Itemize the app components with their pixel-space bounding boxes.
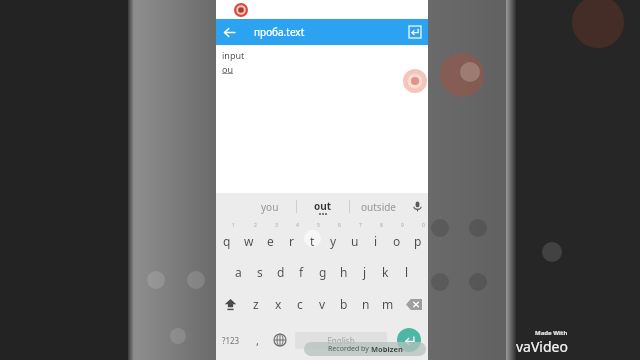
staticText: Mobizen — [371, 344, 403, 354]
button[interactable]: b — [333, 288, 355, 320]
button[interactable]: d — [270, 256, 291, 288]
button[interactable]: o — [386, 220, 407, 256]
staticText: 6 — [338, 222, 341, 229]
staticText: j — [363, 264, 367, 280]
staticText: y — [330, 233, 337, 249]
staticText: a — [235, 264, 242, 280]
staticText: p — [414, 233, 422, 249]
button[interactable]: a — [228, 256, 249, 288]
staticText: 7 — [359, 222, 362, 229]
button[interactable]: r — [281, 220, 302, 256]
button[interactable]: k — [375, 256, 396, 288]
button[interactable]: Backspace — [399, 288, 428, 320]
button[interactable]: j — [354, 256, 375, 288]
staticText: 8 — [380, 222, 383, 229]
button[interactable]: v — [311, 288, 333, 320]
staticText: 3 — [275, 222, 278, 229]
staticText: z — [253, 296, 259, 312]
staticText: ?123 — [222, 335, 240, 346]
button[interactable]: y — [323, 220, 344, 256]
staticText: 9 — [401, 222, 404, 229]
staticText: 4 — [296, 222, 299, 229]
staticText: k — [382, 264, 389, 280]
button[interactable]: Shift — [216, 288, 245, 320]
button[interactable]: outside — [350, 193, 406, 220]
staticText: l — [405, 264, 409, 280]
staticText: ou — [222, 63, 234, 75]
staticText: m — [382, 296, 394, 312]
staticText: h — [340, 264, 348, 280]
staticText: input — [222, 49, 245, 61]
staticText: 1 — [232, 222, 235, 229]
staticText: c — [297, 296, 303, 312]
staticText: x — [275, 296, 282, 312]
staticText: проба.text — [254, 25, 305, 39]
staticText: you — [261, 200, 279, 214]
button[interactable]: you — [244, 193, 296, 220]
staticText: d — [277, 264, 285, 280]
button[interactable]: c — [289, 288, 311, 320]
button[interactable]: ?123 — [216, 320, 246, 360]
staticText: s — [257, 264, 263, 280]
staticText: o — [393, 233, 401, 249]
button[interactable]: Enter — [390, 320, 428, 360]
staticText: n — [362, 296, 370, 312]
button[interactable]: z — [245, 288, 267, 320]
button[interactable]: u — [344, 220, 365, 256]
button[interactable]: Voice input — [406, 193, 428, 220]
staticText: v — [319, 296, 326, 312]
staticText: r — [289, 233, 294, 249]
staticText: outside — [361, 200, 396, 214]
staticText: w — [244, 233, 254, 249]
staticText: 2 — [254, 222, 257, 229]
button[interactable]: w — [238, 220, 260, 256]
button[interactable]: p — [407, 220, 428, 256]
button[interactable]: Change language — [268, 320, 292, 360]
button[interactable]: i — [365, 220, 386, 256]
staticText: 0 — [422, 222, 425, 229]
button[interactable]: h — [333, 256, 354, 288]
button[interactable]: s — [249, 256, 270, 288]
staticText: out — [314, 199, 332, 213]
staticText: vaVideo — [516, 337, 568, 356]
button[interactable]: n — [355, 288, 377, 320]
button[interactable]: x — [267, 288, 289, 320]
button[interactable]: Save — [402, 19, 428, 45]
staticText: , — [256, 333, 259, 348]
staticText: Recorded by — [328, 344, 371, 354]
staticText: e — [267, 233, 274, 249]
staticText: b — [340, 296, 348, 312]
staticText: i — [374, 233, 378, 249]
button[interactable]: , — [246, 320, 268, 360]
staticText: Made With — [535, 329, 568, 337]
staticText: u — [351, 233, 359, 249]
staticText: 5 — [317, 222, 320, 229]
staticText: f — [299, 264, 304, 280]
button[interactable]: g — [312, 256, 333, 288]
button[interactable]: m — [377, 288, 399, 320]
button[interactable]: out — [297, 193, 349, 220]
button[interactable]: English — [295, 332, 387, 349]
button[interactable]: f — [291, 256, 312, 288]
staticText: English — [327, 335, 355, 346]
button[interactable]: q — [216, 220, 238, 256]
button[interactable]: t — [302, 220, 323, 256]
staticText: t — [310, 233, 315, 249]
button[interactable]: Back — [216, 19, 242, 45]
staticText: q — [223, 233, 231, 249]
button[interactable]: e — [260, 220, 281, 256]
button[interactable]: l — [396, 256, 417, 288]
staticText: g — [319, 264, 327, 280]
